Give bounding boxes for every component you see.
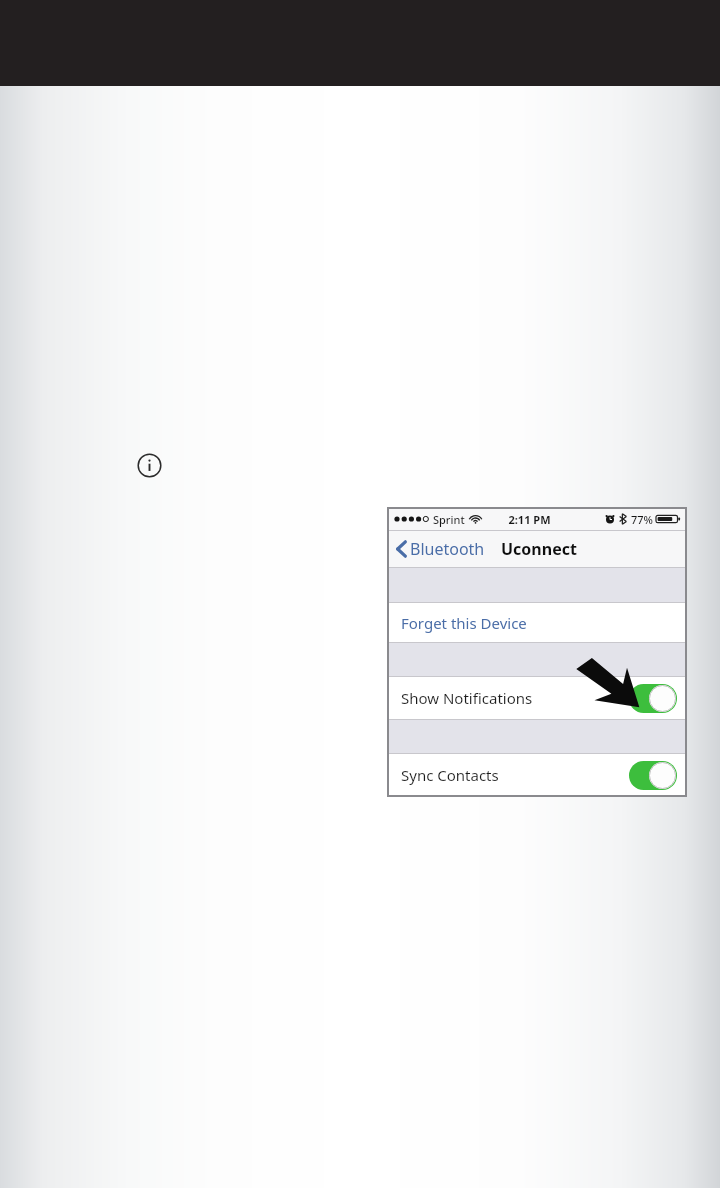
button[interactable]: Sync Contacts xyxy=(388,754,686,796)
staticText: Show Notifications xyxy=(401,688,533,708)
staticText: Forget this Device xyxy=(401,613,527,633)
staticText: 2:11 PM xyxy=(508,512,551,527)
button[interactable]: Bluetooth xyxy=(396,531,485,567)
staticText: 77% xyxy=(631,512,653,527)
staticText: Sprint xyxy=(433,512,465,527)
button[interactable]: Forget this Device xyxy=(388,603,686,642)
button[interactable]: Toggle on xyxy=(629,761,677,790)
staticText: Bluetooth xyxy=(410,538,485,560)
button[interactable]: Information xyxy=(137,453,162,478)
staticText: Uconnect xyxy=(501,538,577,560)
button[interactable]: Show Notifications xyxy=(388,677,686,719)
button[interactable]: Toggle on xyxy=(629,684,677,713)
staticText: Sync Contacts xyxy=(401,765,499,785)
